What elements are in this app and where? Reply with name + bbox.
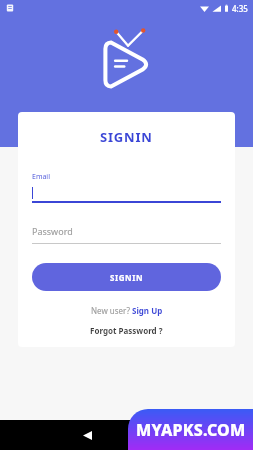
- button[interactable]: SIGNIN: [32, 263, 221, 291]
- button[interactable]: Email: [32, 172, 221, 203]
- button[interactable]: Back: [75, 423, 99, 447]
- staticText: Sign Up: [132, 305, 163, 316]
- staticText: SIGNIN: [110, 272, 144, 283]
- button[interactable]: Forgot Password ?: [90, 325, 163, 336]
- staticText: 4:35: [232, 3, 248, 14]
- button[interactable]: New user?: [91, 305, 163, 316]
- button[interactable]: Password: [32, 225, 221, 244]
- staticText: Email: [32, 172, 50, 182]
- staticText: Password: [32, 225, 73, 237]
- staticText: SIGNIN: [100, 128, 153, 146]
- staticText: MYAPKS.COM: [136, 419, 246, 441]
- staticText: New user?: [91, 305, 132, 316]
